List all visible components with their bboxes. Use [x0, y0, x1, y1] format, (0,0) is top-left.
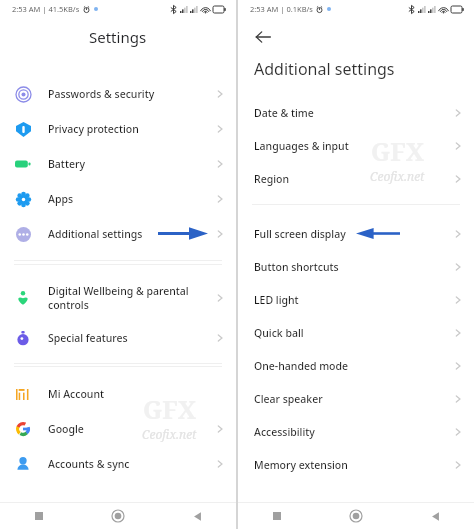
button[interactable]: Mi Account	[0, 376, 236, 411]
staticText: Memory extension	[254, 458, 348, 472]
button[interactable]: Battery	[0, 146, 236, 181]
staticText: Clear speaker	[254, 392, 323, 406]
staticText: Accounts & sync	[48, 457, 130, 471]
button[interactable]: Region	[238, 162, 474, 195]
button[interactable]: Recents	[26, 503, 52, 529]
staticText: Privacy protection	[48, 122, 139, 136]
button[interactable]: Google	[0, 411, 236, 446]
button[interactable]: Button shortcuts	[238, 250, 474, 283]
staticText: Mi Account	[48, 387, 104, 401]
button[interactable]: Back	[184, 503, 210, 529]
staticText: Apps	[48, 192, 74, 206]
button[interactable]: Privacy protection	[0, 111, 236, 146]
staticText: Passwords & security	[48, 87, 155, 101]
staticText: Ceofix.net	[370, 168, 425, 184]
staticText: GFX	[371, 134, 425, 168]
button[interactable]: Back	[250, 24, 276, 50]
staticText: Digital Wellbeing & parental controls	[48, 284, 189, 312]
button[interactable]: Accessibility	[238, 415, 474, 448]
button[interactable]: Languages & input	[238, 129, 474, 162]
staticText: Full screen display	[254, 227, 346, 241]
staticText: 2:53 AM | 0.1KB/s	[250, 4, 313, 14]
button[interactable]: Digital Wellbeing & parental controls	[0, 276, 236, 320]
button[interactable]: LED light	[238, 283, 474, 316]
button[interactable]: Apps	[0, 181, 236, 216]
button[interactable]: One-handed mode	[238, 349, 474, 382]
staticText: 2:53 AM | 41.5KB/s	[12, 4, 80, 14]
staticText: Date & time	[254, 106, 314, 120]
staticText: Quick ball	[254, 326, 304, 340]
button[interactable]: Memory extension	[238, 448, 474, 481]
staticText: LED light	[254, 293, 299, 307]
staticText: One-handed mode	[254, 359, 349, 373]
staticText: Google	[48, 422, 84, 436]
staticText: Settings	[89, 27, 147, 47]
staticText: Special features	[48, 331, 128, 345]
button[interactable]: Special features	[0, 320, 236, 355]
button[interactable]: Date & time	[238, 96, 474, 129]
button[interactable]: Full screen display	[238, 217, 474, 250]
button[interactable]: Home	[105, 503, 131, 529]
staticText: Ceofix.net	[142, 426, 197, 442]
staticText: Additional settings	[48, 227, 143, 241]
staticText: Battery	[48, 157, 85, 171]
button[interactable]: Passwords & security	[0, 76, 236, 111]
button[interactable]: Recents	[264, 503, 290, 529]
staticText: Button shortcuts	[254, 260, 339, 274]
button[interactable]: Quick ball	[238, 316, 474, 349]
button[interactable]: Home	[343, 503, 369, 529]
staticText: Additional settings	[254, 58, 395, 80]
staticText: Languages & input	[254, 139, 349, 153]
staticText: GFX	[143, 392, 197, 426]
button[interactable]: Accounts & sync	[0, 446, 236, 481]
button[interactable]: Additional settings	[0, 216, 236, 251]
button[interactable]: Clear speaker	[238, 382, 474, 415]
staticText: Accessibility	[254, 425, 315, 439]
button[interactable]: Back	[422, 503, 448, 529]
staticText: Region	[254, 172, 290, 186]
